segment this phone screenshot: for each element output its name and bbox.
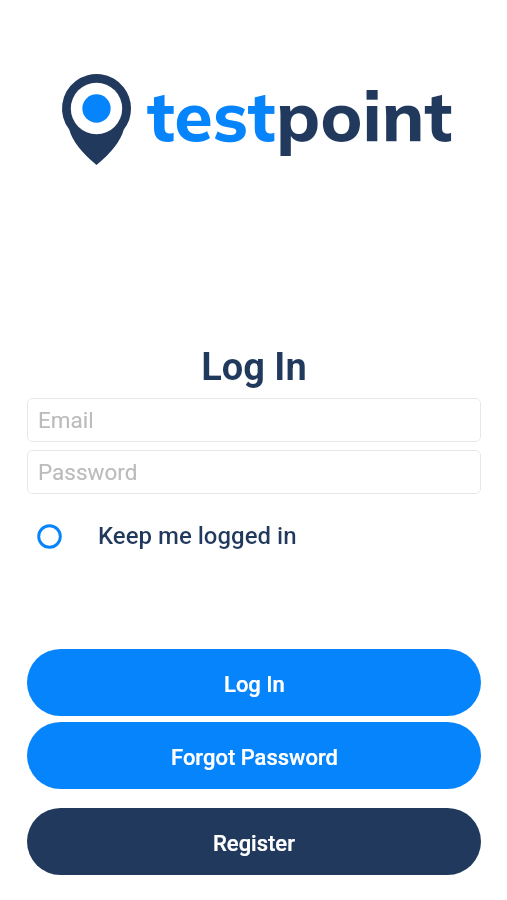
staticText: Email [38, 407, 94, 433]
staticText: Log In [27, 345, 481, 390]
staticText: Keep me logged in [98, 522, 297, 550]
staticText: Log In [224, 672, 285, 698]
staticText: Forgot Password [171, 745, 338, 771]
button[interactable]: Keep me logged in [37, 522, 297, 550]
staticText: test [147, 71, 276, 159]
staticText: Password [38, 459, 138, 485]
button[interactable]: Register [27, 808, 481, 875]
staticText: point [276, 71, 453, 159]
other: Keep me logged in [37, 524, 62, 549]
button[interactable]: Log In [27, 649, 481, 716]
staticText: Register [213, 831, 295, 857]
button[interactable]: Password [27, 450, 481, 494]
button[interactable]: Forgot Password [27, 722, 481, 789]
button[interactable]: Email [27, 398, 481, 442]
